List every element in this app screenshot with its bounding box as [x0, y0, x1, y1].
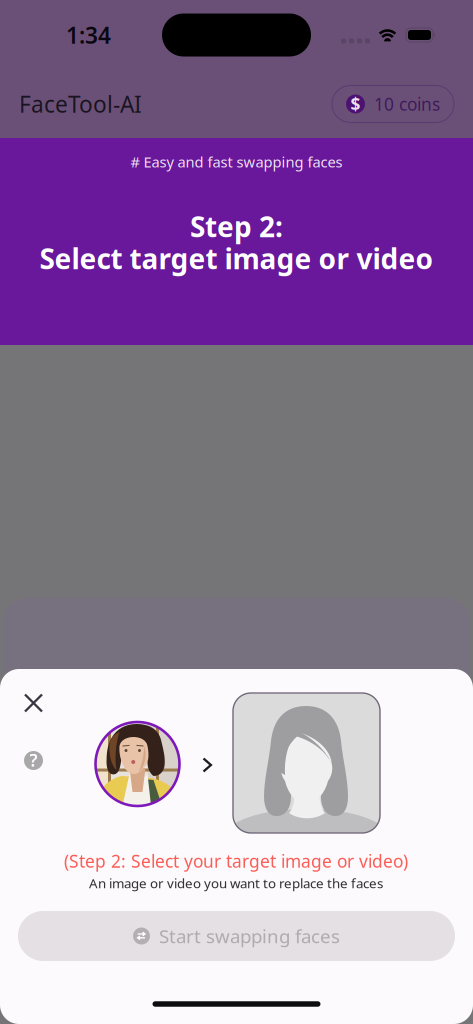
staticText: Start swapping faces: [159, 924, 340, 948]
button[interactable]: $: [332, 85, 454, 122]
staticText: 1:34: [66, 20, 111, 50]
button[interactable]: Start swapping faces: [18, 911, 455, 961]
staticText: 10 coins: [374, 92, 440, 115]
staticText: ?: [29, 748, 37, 771]
staticText: Step 2:: [190, 208, 283, 245]
staticText: Select target image or video: [39, 240, 433, 277]
staticText: $: [350, 92, 360, 115]
staticText: (Step 2: Select your target image or vid…: [64, 849, 408, 872]
staticText: An image or video you want to replace th…: [89, 874, 383, 892]
button[interactable]: Close: [11, 683, 55, 723]
staticText: # Easy and fast swapping faces: [130, 152, 342, 171]
button[interactable]: Source face: [95, 722, 179, 806]
button[interactable]: Help: [18, 745, 48, 775]
staticText: FaceTool-AI: [19, 89, 142, 119]
button[interactable]: Select target image or video: [233, 693, 380, 833]
